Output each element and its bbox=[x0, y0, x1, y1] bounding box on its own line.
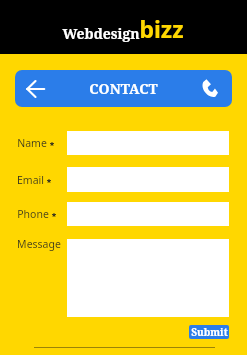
staticText: bizz bbox=[139, 13, 184, 44]
staticText: Submit bbox=[191, 325, 228, 339]
button[interactable]: Back bbox=[15, 70, 60, 107]
staticText: Webdesign bbox=[62, 24, 140, 43]
staticText: Message bbox=[17, 237, 61, 251]
staticText: Phone bbox=[17, 207, 49, 221]
button[interactable]: Call bbox=[177, 70, 232, 107]
staticText: CONTACT bbox=[89, 79, 158, 98]
staticText: Email bbox=[17, 173, 44, 187]
button[interactable]: Submit bbox=[189, 325, 229, 339]
staticText: Name bbox=[17, 136, 47, 150]
